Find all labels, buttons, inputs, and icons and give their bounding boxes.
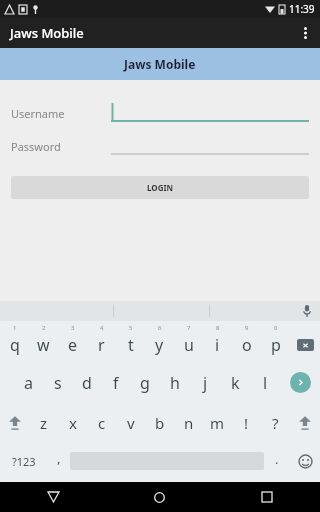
staticText: j xyxy=(203,372,208,394)
staticText: ? xyxy=(272,413,279,433)
button[interactable]: 8 xyxy=(203,321,232,363)
button[interactable]: Shift xyxy=(0,402,30,443)
button[interactable]: 5 xyxy=(116,321,145,363)
staticText: r xyxy=(98,334,105,356)
staticText: ! xyxy=(244,413,249,433)
staticText: e xyxy=(68,334,78,356)
staticText: p xyxy=(271,334,281,356)
button[interactable]: ! xyxy=(232,402,261,443)
staticText: 0 xyxy=(274,324,278,332)
staticText: LOGIN xyxy=(147,182,174,193)
button[interactable]: 4 xyxy=(87,321,116,363)
button[interactable]: a xyxy=(14,363,43,402)
staticText: 2 xyxy=(42,324,46,332)
button[interactable]: LOGIN xyxy=(11,176,309,199)
staticText: x xyxy=(69,413,77,433)
button[interactable]: 9 xyxy=(232,321,261,363)
staticText: , xyxy=(57,449,61,467)
staticText: q xyxy=(10,334,20,356)
staticText: Password xyxy=(11,139,111,154)
button[interactable]: Back xyxy=(0,482,106,512)
staticText: 9 xyxy=(245,324,249,332)
staticText: 3 xyxy=(71,324,75,332)
staticText: Jaws Mobile xyxy=(10,24,84,42)
staticText: z xyxy=(40,413,48,433)
staticText: 1 xyxy=(13,324,17,332)
staticText: 4 xyxy=(100,324,104,332)
staticText: f xyxy=(113,372,119,394)
staticText: 11:39 xyxy=(289,2,315,16)
button[interactable]: 7 xyxy=(174,321,203,363)
staticText: s xyxy=(54,372,62,394)
button[interactable]: 1 xyxy=(0,321,29,363)
button[interactable]: m xyxy=(203,402,232,443)
button[interactable]: , xyxy=(48,443,70,479)
staticText: d xyxy=(82,372,92,394)
staticText: 5 xyxy=(129,324,133,332)
staticText: v xyxy=(127,413,135,433)
button[interactable]: More options xyxy=(290,18,320,48)
button[interactable]: 6 xyxy=(145,321,174,363)
button[interactable]: Shift xyxy=(290,402,320,443)
button[interactable]: Emoji xyxy=(290,443,320,479)
staticText: g xyxy=(140,372,150,394)
button[interactable]: f xyxy=(101,363,130,402)
button[interactable]: d xyxy=(72,363,101,402)
staticText: Jaws Mobile xyxy=(124,56,196,72)
staticText: h xyxy=(170,372,180,394)
staticText: m xyxy=(210,413,225,433)
button[interactable]: c xyxy=(87,402,116,443)
button[interactable]: Backspace xyxy=(290,321,320,363)
staticText: b xyxy=(155,413,165,433)
staticText: w xyxy=(37,334,50,356)
staticText: 7 xyxy=(187,324,191,332)
button[interactable]: Next xyxy=(280,363,320,402)
button[interactable]: v xyxy=(116,402,145,443)
button[interactable]: ? xyxy=(261,402,290,443)
button[interactable]: ?123 xyxy=(0,443,48,479)
staticText: l xyxy=(263,372,268,394)
button[interactable]: Recents xyxy=(213,482,320,512)
staticText: Username xyxy=(11,106,111,121)
staticText: y xyxy=(155,334,164,356)
staticText: 8 xyxy=(216,324,220,332)
button[interactable]: n xyxy=(174,402,203,443)
button[interactable]: g xyxy=(130,363,160,402)
button[interactable]: j xyxy=(190,363,220,402)
staticText: k xyxy=(231,372,240,394)
button[interactable]: Voice input xyxy=(294,301,320,321)
staticText: n xyxy=(184,413,194,433)
button[interactable]: x xyxy=(58,402,87,443)
button[interactable]: b xyxy=(145,402,174,443)
staticText: o xyxy=(242,334,252,356)
staticText: ?123 xyxy=(12,454,36,469)
button[interactable]: Password xyxy=(0,135,320,157)
button[interactable]: Username xyxy=(0,102,320,124)
button[interactable]: Home xyxy=(106,482,213,512)
button[interactable]: 3 xyxy=(58,321,87,363)
button[interactable]: h xyxy=(160,363,190,402)
staticText: a xyxy=(24,372,33,394)
staticText: 6 xyxy=(158,324,162,332)
button[interactable]: . xyxy=(264,443,290,479)
staticText: c xyxy=(98,413,106,433)
staticText: i xyxy=(215,334,220,356)
button[interactable]: k xyxy=(220,363,250,402)
staticText: t xyxy=(128,334,134,356)
staticText: u xyxy=(184,334,194,356)
button[interactable]: s xyxy=(43,363,72,402)
staticText: . xyxy=(275,450,279,468)
button[interactable]: 2 xyxy=(29,321,58,363)
button[interactable]: l xyxy=(250,363,280,402)
button[interactable]: 0 xyxy=(261,321,290,363)
button[interactable]: z xyxy=(30,402,58,443)
